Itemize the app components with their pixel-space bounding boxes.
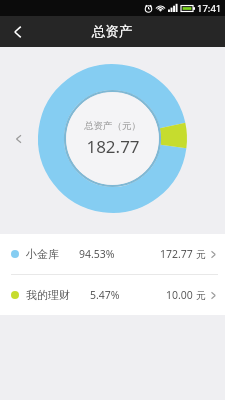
staticText: 17:41 (197, 2, 222, 15)
staticText: 5.47% (90, 288, 120, 302)
staticText: 我的理财 (26, 288, 70, 302)
staticText: 总资产 (92, 23, 133, 40)
button[interactable]: 我的理财 (0, 275, 225, 315)
staticText: 182.77 (86, 135, 140, 158)
button[interactable]: Back (0, 16, 36, 47)
button[interactable]: 小金库 (0, 234, 225, 274)
staticText: 总资产（元） (84, 120, 141, 132)
staticText: 10.00 (166, 288, 193, 302)
staticText: 小金库 (26, 247, 59, 261)
button[interactable]: Previous (10, 128, 26, 150)
staticText: 172.77 (160, 247, 193, 261)
staticText: 元 (196, 248, 206, 261)
staticText: 元 (196, 289, 206, 302)
staticText: 94.53% (79, 247, 115, 261)
